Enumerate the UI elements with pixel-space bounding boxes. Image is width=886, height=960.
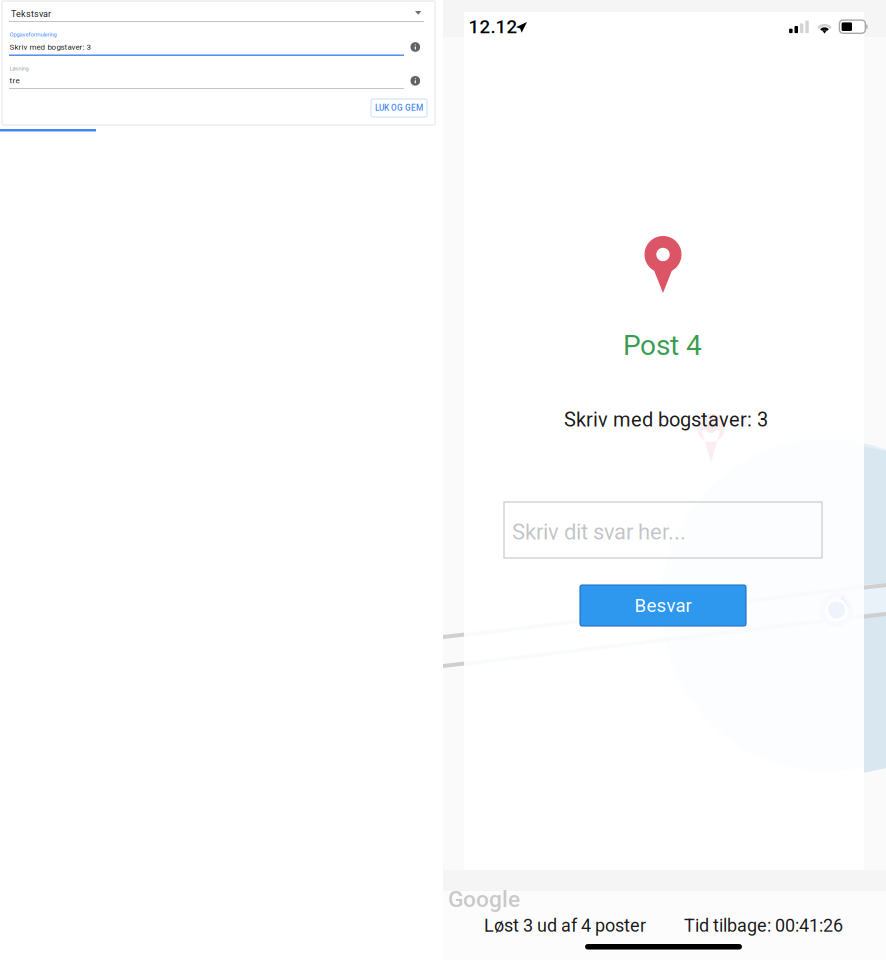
staticText: Tekstsvar [11, 8, 51, 19]
staticText: Google [448, 886, 520, 913]
staticText: tre [9, 76, 19, 85]
staticText: Opgaveformulering [9, 31, 56, 38]
staticText: LUK OG GEM [375, 103, 423, 113]
staticText: Skriv med bogstaver: 3 [9, 42, 90, 52]
staticText: Løst 3 ud af 4 poster [484, 915, 646, 936]
button[interactable]: Tekstsvar [9, 3, 424, 23]
staticText: Tid tilbage: 00:41:26 [684, 915, 843, 936]
staticText: Post 4 [623, 329, 702, 362]
staticText: Løsning [9, 65, 28, 72]
button[interactable]: Besvar [580, 585, 746, 626]
staticText: Besvar [634, 595, 691, 616]
staticText: 12.12 [468, 16, 517, 38]
staticText: Skriv dit svar her... [512, 519, 686, 545]
staticText: Skriv med bogstaver: 3 [564, 408, 768, 431]
button[interactable]: LUK OG GEM [371, 99, 427, 117]
